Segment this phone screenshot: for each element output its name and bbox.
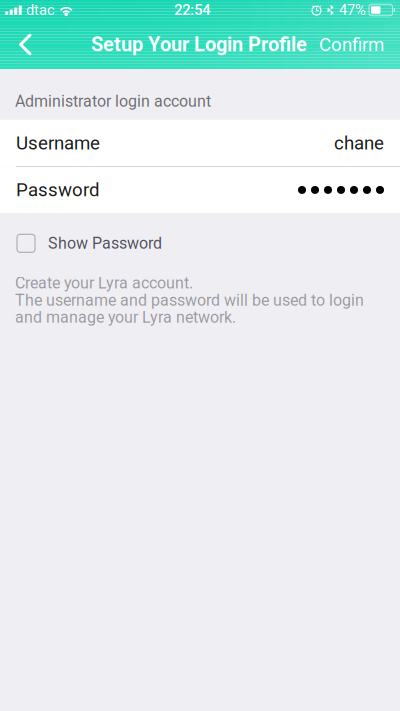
staticText: Username [16,132,100,154]
staticText: 22:54 [174,1,210,19]
button[interactable]: Back [0,25,44,64]
staticText: The username and password will be used t… [15,291,364,310]
staticText: dtac [26,1,55,19]
staticText: Create your Lyra account. [15,274,193,292]
staticText: Confirm [319,34,384,55]
button[interactable]: Confirm [307,25,400,64]
staticText: Setup Your Login Profile [91,33,307,56]
staticText: Show Password [48,234,162,253]
button[interactable]: Password [0,167,400,213]
staticText: and manage your Lyra network. [15,308,236,327]
staticText: chane [334,132,384,154]
staticText: Password [16,179,100,201]
button[interactable]: Username [0,120,400,166]
button[interactable]: Show Password [0,213,400,259]
staticText: 47% [339,1,366,19]
staticText: Administrator login account [15,92,211,111]
